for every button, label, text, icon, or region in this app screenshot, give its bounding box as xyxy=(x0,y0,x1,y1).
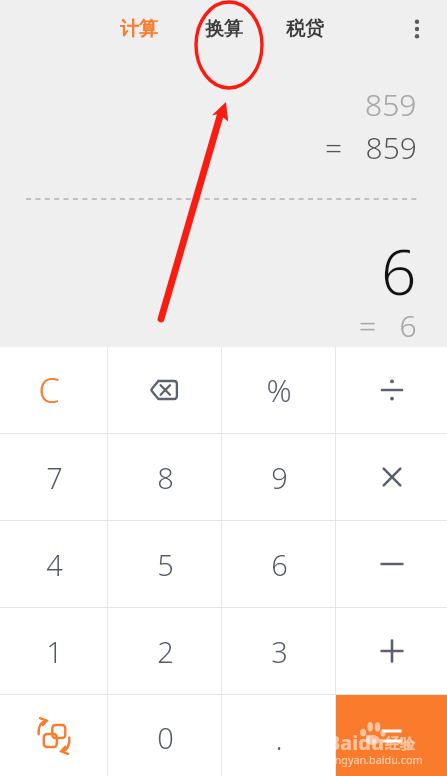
button[interactable]: More options xyxy=(395,7,439,51)
staticText: Baidu xyxy=(327,729,384,756)
button[interactable]: 4 xyxy=(0,521,108,607)
staticText: 1 xyxy=(46,632,63,671)
button[interactable]: 5 xyxy=(108,521,222,607)
other: Backspace xyxy=(148,377,182,403)
button[interactable]: 7 xyxy=(0,434,108,520)
other: Plus xyxy=(375,634,409,668)
button[interactable]: 0 xyxy=(108,695,222,776)
button[interactable]: % xyxy=(222,347,336,433)
button[interactable]: 1 xyxy=(0,608,108,694)
staticText: 9 xyxy=(271,458,288,497)
button[interactable]: 计算 xyxy=(111,8,166,50)
button[interactable]: 8 xyxy=(108,434,222,520)
staticText: 6 xyxy=(381,229,417,313)
staticText: jingyan.baidu.com xyxy=(329,752,423,767)
other: Equals xyxy=(375,719,409,753)
staticText: 8 xyxy=(157,458,174,497)
other: Minus xyxy=(375,547,409,581)
staticText: 3 xyxy=(271,632,288,671)
button[interactable]: 2 xyxy=(108,608,222,694)
staticText: 4 xyxy=(46,545,63,584)
staticText: 5 xyxy=(157,545,174,584)
button[interactable]: 3 xyxy=(222,608,336,694)
button[interactable]: Plus xyxy=(336,608,447,694)
button[interactable]: Backspace xyxy=(108,347,222,433)
staticText: = 6 xyxy=(359,305,417,346)
staticText: 2 xyxy=(157,632,174,671)
button[interactable]: . xyxy=(222,695,336,776)
staticText: 859 xyxy=(365,84,417,125)
staticText: 7 xyxy=(46,458,63,497)
button[interactable]: Unit conversion xyxy=(0,695,108,776)
staticText: 计算 xyxy=(120,17,158,41)
button[interactable]: Minus xyxy=(336,521,447,607)
staticText: % xyxy=(266,369,292,411)
button[interactable]: 6 xyxy=(222,521,336,607)
other: Multiply xyxy=(375,460,409,494)
button[interactable]: Divide xyxy=(336,347,447,433)
button[interactable]: 换算 xyxy=(196,8,251,50)
staticText: . xyxy=(275,719,283,758)
other: Divide xyxy=(375,373,409,407)
staticText: 6 xyxy=(271,545,288,584)
staticText: 0 xyxy=(157,718,174,757)
staticText: 换算 xyxy=(205,17,243,41)
button[interactable]: 税贷 xyxy=(277,8,332,50)
staticText: 经验 xyxy=(385,735,415,754)
button[interactable]: Equals xyxy=(336,695,447,776)
staticText: 税贷 xyxy=(286,17,324,41)
button[interactable]: 9 xyxy=(222,434,336,520)
staticText: C xyxy=(38,367,60,413)
button[interactable]: C xyxy=(0,347,108,433)
other: Unit conversion xyxy=(34,716,74,756)
staticText: = 859 xyxy=(325,127,417,168)
button[interactable]: Multiply xyxy=(336,434,447,520)
